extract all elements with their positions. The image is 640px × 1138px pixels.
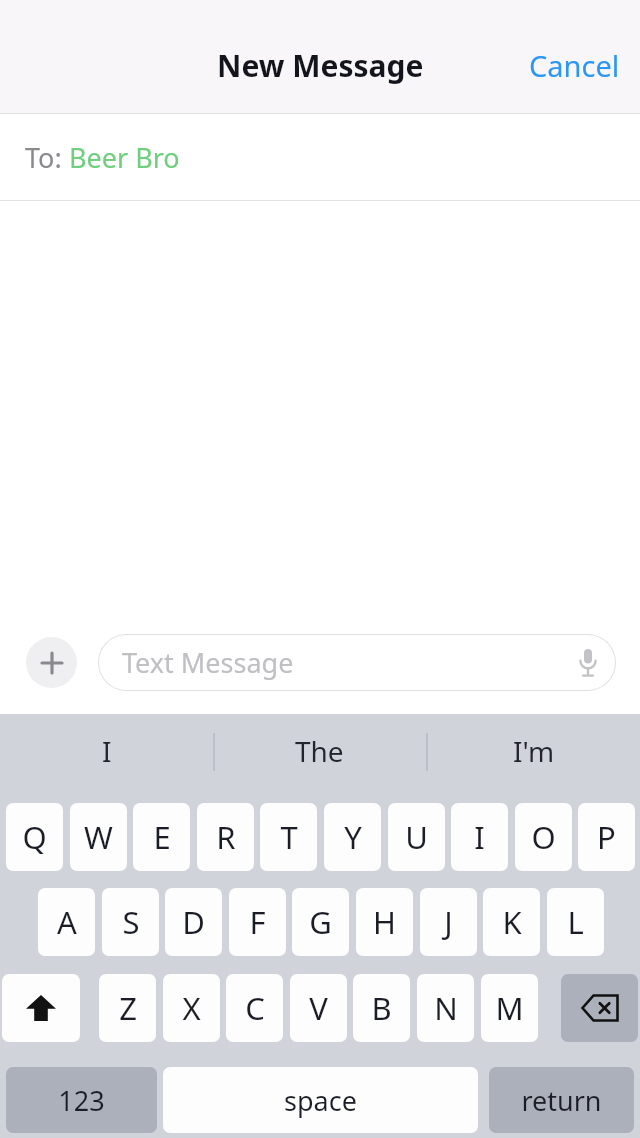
staticText: G [309,901,332,943]
button[interactable]: 123 [6,1067,157,1133]
staticText: I [474,816,485,858]
button[interactable]: U [388,803,445,871]
staticText: 123 [58,1082,105,1119]
staticText: E [153,816,171,858]
staticText: Cancel [529,46,620,85]
button[interactable]: Backspace [561,974,638,1042]
staticText: New Message [217,45,424,86]
staticText: H [373,901,396,943]
staticText: S [122,901,140,943]
button[interactable]: L [547,888,604,956]
staticText: K [502,901,522,943]
staticText: V [309,987,328,1029]
staticText: N [434,987,458,1029]
button[interactable]: Q [6,803,63,871]
button[interactable]: K [483,888,540,956]
staticText: Text Message [122,644,294,681]
button[interactable]: return [489,1067,634,1133]
staticText: I [102,732,112,770]
button[interactable]: Cancel [509,36,640,95]
staticText: M [495,987,524,1029]
button[interactable]: G [292,888,349,956]
staticText: The [295,732,344,770]
button[interactable]: W [70,803,127,871]
button[interactable]: O [515,803,572,871]
button[interactable]: I [0,714,213,788]
staticText: To: [25,139,69,176]
staticText: O [531,816,556,858]
button[interactable]: F [229,888,286,956]
button[interactable]: M [481,974,538,1042]
button[interactable]: space [163,1067,478,1133]
staticText: U [405,816,428,858]
staticText: Z [119,987,137,1029]
staticText: T [280,816,298,858]
button[interactable]: To: [0,114,640,200]
staticText: D [182,901,205,943]
staticText: F [249,901,266,943]
button[interactable]: Y [324,803,381,871]
button[interactable]: V [290,974,347,1042]
button[interactable]: D [165,888,222,956]
staticText: W [84,816,113,858]
button[interactable]: Text Message [98,634,616,691]
staticText: J [444,901,453,943]
staticText: Beer Bro [69,139,180,176]
button[interactable]: Add attachment [26,637,77,688]
staticText: A [57,901,77,943]
button[interactable]: P [578,803,635,871]
button[interactable]: E [133,803,190,871]
staticText: X [182,987,201,1029]
staticText: return [521,1082,602,1119]
button[interactable]: C [226,974,283,1042]
button[interactable]: The [213,714,426,788]
button[interactable]: Dictate [578,649,598,677]
button[interactable]: B [353,974,410,1042]
button[interactable]: Z [99,974,156,1042]
staticText: B [371,987,392,1029]
button[interactable]: S [102,888,159,956]
staticText: R [216,816,236,858]
staticText: space [284,1082,357,1119]
button[interactable]: I [451,803,508,871]
staticText: Q [22,816,47,858]
button[interactable]: T [260,803,317,871]
button[interactable]: H [356,888,413,956]
button[interactable]: Shift [2,974,80,1042]
staticText: I'm [513,732,555,770]
staticText: L [567,901,584,943]
button[interactable]: X [163,974,220,1042]
staticText: Y [344,816,362,858]
button[interactable]: I'm [427,714,640,788]
button[interactable]: R [197,803,254,871]
button[interactable]: N [417,974,474,1042]
button[interactable]: A [38,888,95,956]
staticText: P [597,816,616,858]
staticText: C [245,987,265,1029]
button[interactable]: J [420,888,477,956]
